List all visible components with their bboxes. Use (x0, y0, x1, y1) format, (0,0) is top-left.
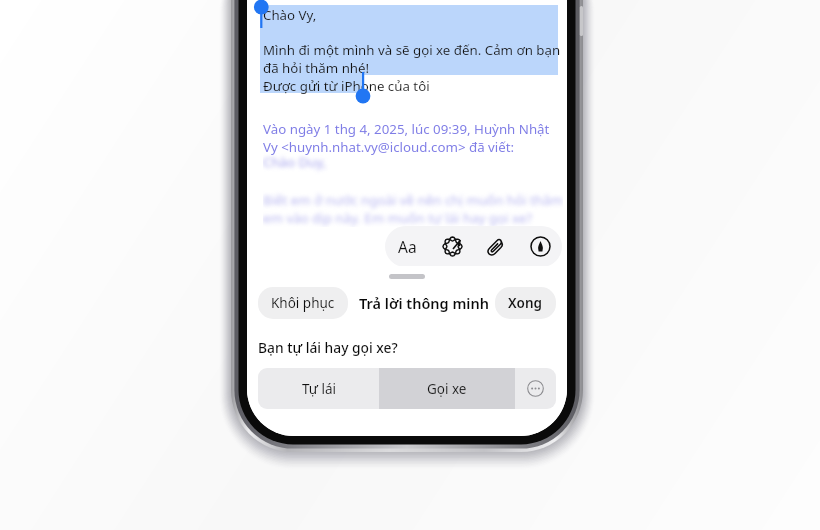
staticText: Aa (398, 236, 417, 257)
staticText: Biết em ở nước ngoài về nên chị muốn hỏi… (263, 191, 563, 209)
staticText: Chào Vy, (263, 6, 317, 24)
staticText: em vào dịp này. Em muốn tự lái hay gọi x… (263, 209, 533, 227)
button[interactable]: Markup (518, 226, 562, 267)
staticText: Tự lái (302, 380, 336, 398)
staticText: Trả lời thông minh (359, 293, 489, 313)
button[interactable]: Xong (495, 287, 556, 319)
button[interactable]: Text formatting (385, 226, 430, 267)
button[interactable]: Gọi xe (379, 368, 515, 409)
staticText: Được gửi từ iPhone của tôi (263, 77, 430, 95)
staticText: Vào ngày 1 thg 4, 2025, lúc 09:39, Huỳnh… (263, 120, 550, 138)
button[interactable]: Attach file (474, 226, 518, 267)
staticText: Bạn tự lái hay gọi xe? (258, 338, 398, 357)
button[interactable]: More options (515, 368, 556, 409)
staticText: đã hỏi thăm nhé! (263, 59, 370, 77)
button[interactable]: Khôi phục (258, 287, 348, 319)
staticText: Gọi xe (427, 380, 467, 398)
staticText: Xong (508, 294, 543, 312)
staticText: Chào Duy, (263, 153, 327, 171)
staticText: Khôi phục (271, 294, 335, 312)
button[interactable]: Writing Tools (430, 226, 474, 267)
staticText: Vy <huynh.nhat.vy@icloud.com> đã viết: (263, 138, 515, 156)
button[interactable]: Tự lái (258, 368, 379, 409)
staticText: Mình đi một mình và sẽ gọi xe đến. Cảm ơ… (263, 41, 561, 59)
